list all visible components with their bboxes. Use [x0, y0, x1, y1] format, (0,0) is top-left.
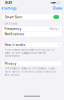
staticText: Frequency — [4, 27, 21, 31]
staticText: OPTIONS — [5, 22, 18, 25]
staticText: Smart Sync — [4, 15, 22, 19]
staticText: Done — [53, 6, 62, 10]
staticText: Settings — [4, 6, 17, 10]
button[interactable]: How it works — [2, 43, 62, 47]
button[interactable]: Settings — [0, 6, 18, 11]
staticText: Privacy — [4, 61, 16, 65]
button[interactable]: Smart Sync — [2, 14, 62, 20]
staticText: 9:41 — [5, 1, 11, 5]
staticText: How it works — [4, 43, 25, 47]
button[interactable]: Done — [51, 6, 64, 11]
staticText: Daily — [50, 27, 58, 31]
staticText: Notifications — [4, 32, 24, 36]
staticText: Information stays on this device. Learn … — [5, 67, 57, 76]
button[interactable]: Notifications — [2, 32, 62, 37]
button[interactable]: Frequency — [2, 26, 62, 31]
staticText: Your device keeps everything up to date … — [5, 48, 55, 58]
button[interactable]: Privacy — [2, 61, 62, 66]
